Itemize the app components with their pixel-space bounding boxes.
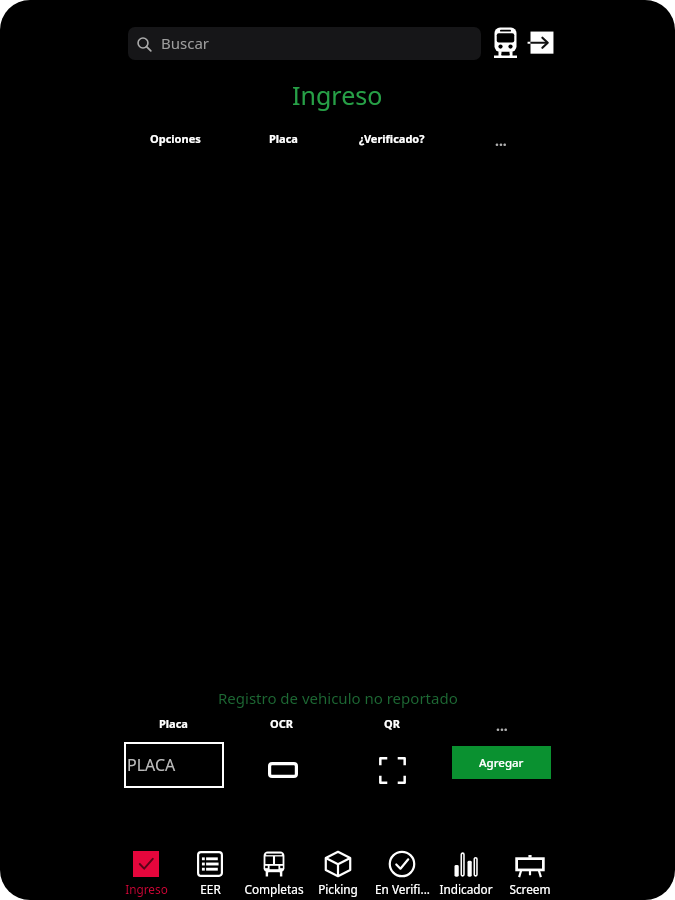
staticText: ... (495, 131, 507, 150)
button[interactable]: Placa (159, 716, 188, 731)
button[interactable]: Completas (242, 838, 306, 897)
staticText: Screem (509, 881, 551, 897)
button[interactable]: Buscar (128, 27, 481, 60)
staticText: ¿Verificado? (359, 131, 425, 146)
button[interactable]: EER (178, 838, 242, 897)
staticText: Placa (159, 716, 188, 731)
button[interactable]: En Verifi... (370, 838, 434, 897)
button[interactable]: Mas opciones (495, 131, 507, 150)
button[interactable]: Ingreso (114, 838, 178, 897)
button[interactable]: Mas opciones (496, 716, 508, 735)
staticText: Buscar (161, 33, 210, 53)
staticText: Ingreso (292, 78, 383, 112)
staticText: Ingreso (125, 881, 168, 897)
staticText: Completas (244, 881, 304, 897)
staticText: Opciones (150, 131, 201, 146)
staticText: ... (496, 716, 508, 735)
staticText: Indicador (439, 881, 493, 897)
button[interactable]: Ingresar (524, 28, 558, 62)
button[interactable]: Placa (269, 131, 298, 146)
staticText: Picking (318, 881, 358, 897)
button[interactable]: OCR (263, 750, 303, 790)
button[interactable]: QR (372, 750, 412, 790)
button[interactable]: Picking (306, 838, 370, 897)
button[interactable]: Screem (498, 838, 562, 897)
button[interactable]: OCR (270, 716, 293, 731)
staticText: En Verifi... (375, 881, 430, 897)
button[interactable]: PLACA (124, 742, 224, 788)
button[interactable]: Agregar (452, 746, 551, 779)
staticText: QR (384, 716, 400, 731)
button[interactable]: Opciones (150, 131, 201, 146)
staticText: EER (200, 881, 221, 897)
staticText: Placa (269, 131, 298, 146)
staticText: Registro de vehiculo no reportado (218, 688, 458, 708)
button[interactable]: Indicador (434, 838, 498, 897)
button[interactable]: Tren (488, 25, 522, 59)
button[interactable]: QR (384, 716, 400, 731)
staticText: Agregar (479, 755, 524, 771)
staticText: PLACA (127, 754, 176, 776)
staticText: OCR (270, 716, 293, 731)
button[interactable]: ¿Verificado? (359, 131, 425, 146)
